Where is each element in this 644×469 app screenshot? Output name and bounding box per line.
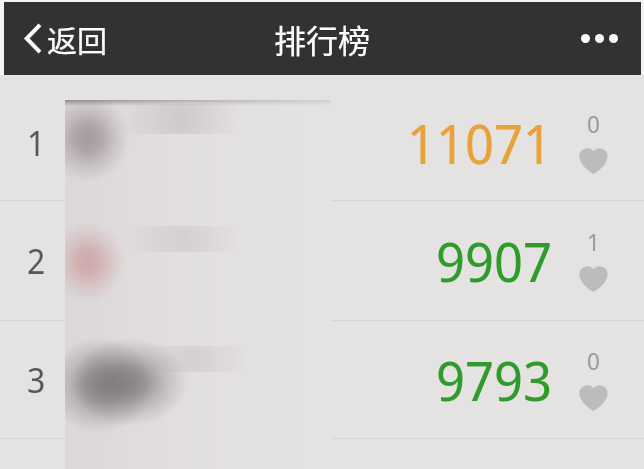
staticText: 返回: [47, 17, 107, 60]
button[interactable]: More options: [555, 14, 641, 63]
staticText: 3: [27, 357, 46, 403]
staticText: 排行榜: [274, 16, 371, 62]
staticText: 9907: [436, 224, 552, 298]
button[interactable]: 3: [0, 321, 644, 439]
staticText: 1: [587, 225, 600, 258]
button[interactable]: 返回: [4, 9, 119, 68]
button[interactable]: 2: [0, 201, 644, 321]
staticText: 2: [27, 238, 46, 284]
button[interactable]: 1: [0, 84, 644, 201]
staticText: 0: [587, 344, 600, 377]
staticText: 9793: [436, 343, 552, 417]
staticText: 11071: [407, 106, 552, 180]
staticText: 0: [587, 107, 600, 140]
staticText: 1: [27, 120, 46, 166]
